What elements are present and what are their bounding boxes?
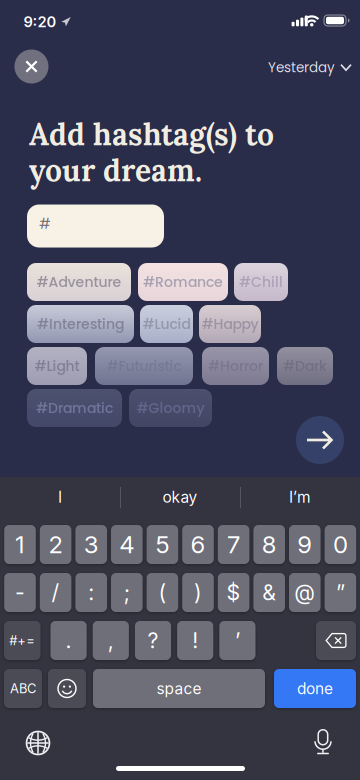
staticText: #Interesting	[37, 314, 124, 334]
staticText: !	[192, 628, 198, 653]
staticText: #	[39, 214, 51, 234]
staticText: :	[88, 580, 94, 605]
staticText: #Happy	[201, 314, 258, 334]
staticText: #Adventure	[36, 272, 121, 292]
staticText: #Light	[34, 356, 79, 376]
staticText: #Dramatic	[36, 398, 113, 418]
staticText: .	[66, 628, 72, 653]
staticText: 5	[155, 530, 169, 559]
staticText: Add hashtag(s) to	[29, 115, 274, 153]
staticText: 4	[119, 530, 134, 559]
staticText: 7	[227, 530, 240, 559]
staticText: #Lucid	[142, 314, 190, 334]
staticText: $	[227, 580, 241, 605]
staticText: your dream.	[29, 151, 202, 189]
staticText: #+=	[9, 633, 35, 648]
staticText: 1	[15, 530, 25, 559]
staticText: 3	[84, 530, 99, 559]
staticText: (	[158, 580, 166, 605]
staticText: 9:20	[23, 13, 56, 31]
staticText: @	[294, 580, 315, 605]
staticText: /	[52, 580, 60, 605]
staticText: 2	[49, 530, 63, 559]
staticText: done	[297, 679, 333, 698]
staticText: 8	[262, 530, 277, 559]
staticText: #Futuristic	[106, 356, 181, 376]
staticText: I	[58, 488, 62, 506]
staticText: ?	[147, 628, 158, 653]
staticText: ”	[336, 580, 345, 605]
staticText: ;	[124, 580, 130, 605]
staticText: ,	[108, 628, 114, 653]
staticText: )	[194, 580, 202, 605]
staticText: #Romance	[143, 272, 223, 292]
staticText: #Gloomy	[136, 398, 204, 418]
staticText: I’m	[289, 488, 311, 506]
staticText: #Dark	[283, 356, 327, 376]
staticText: okay	[162, 488, 197, 506]
staticText: 9	[297, 530, 312, 559]
staticText: -	[15, 580, 25, 605]
staticText: ’	[235, 628, 240, 653]
staticText: &	[262, 580, 276, 605]
staticText: #Chill	[239, 272, 283, 292]
staticText: ABC	[10, 681, 36, 696]
staticText: 0	[333, 530, 348, 559]
staticText: #Horror	[208, 356, 263, 376]
staticText: space	[156, 679, 201, 698]
staticText: 6	[190, 530, 205, 559]
staticText: Yesterday	[268, 58, 335, 77]
